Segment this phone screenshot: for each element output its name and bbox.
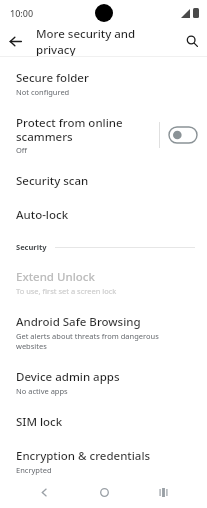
button[interactable]: Auto-lock — [0, 198, 207, 232]
staticText: Off — [16, 145, 28, 155]
button[interactable]: Protect from online scammers — [0, 106, 207, 164]
staticText: SIM lock — [16, 414, 63, 430]
staticText: Encryption & credentials — [16, 448, 151, 464]
staticText: Encrypted — [16, 465, 52, 475]
button[interactable]: Secure folder — [0, 61, 207, 106]
staticText: More security and privacy — [36, 26, 177, 56]
button[interactable]: Back — [0, 26, 30, 56]
staticText: 10:00 — [10, 7, 34, 19]
button[interactable]: Back — [28, 476, 60, 508]
staticText: Extend Unlock — [16, 269, 95, 285]
staticText: Protect from online scammers — [16, 115, 149, 144]
button[interactable]: Encryption & credentials — [0, 439, 207, 476]
button[interactable]: Search — [177, 26, 207, 56]
staticText: Device admin apps — [16, 369, 120, 385]
staticText: Android Safe Browsing — [16, 314, 141, 330]
staticText: Security scan — [16, 173, 89, 189]
staticText: To use, first set a screen lock — [16, 286, 117, 296]
button[interactable]: Home — [88, 476, 120, 508]
button[interactable]: Protect from online scammers toggle — [169, 127, 197, 143]
button[interactable]: SIM lock — [0, 405, 207, 439]
button[interactable]: Security scan — [0, 164, 207, 198]
button[interactable]: Extend Unlock — [0, 260, 207, 305]
staticText: Not configured — [16, 87, 70, 97]
button[interactable]: Device admin apps — [0, 360, 207, 405]
staticText: Auto-lock — [16, 207, 69, 223]
staticText: Secure folder — [16, 70, 89, 86]
staticText: Security — [16, 242, 47, 252]
staticText: Get alerts about threats from dangerous … — [16, 331, 191, 351]
button[interactable]: Recent apps — [147, 476, 179, 508]
button[interactable]: Android Safe Browsing — [0, 305, 207, 360]
staticText: No active apps — [16, 386, 68, 396]
